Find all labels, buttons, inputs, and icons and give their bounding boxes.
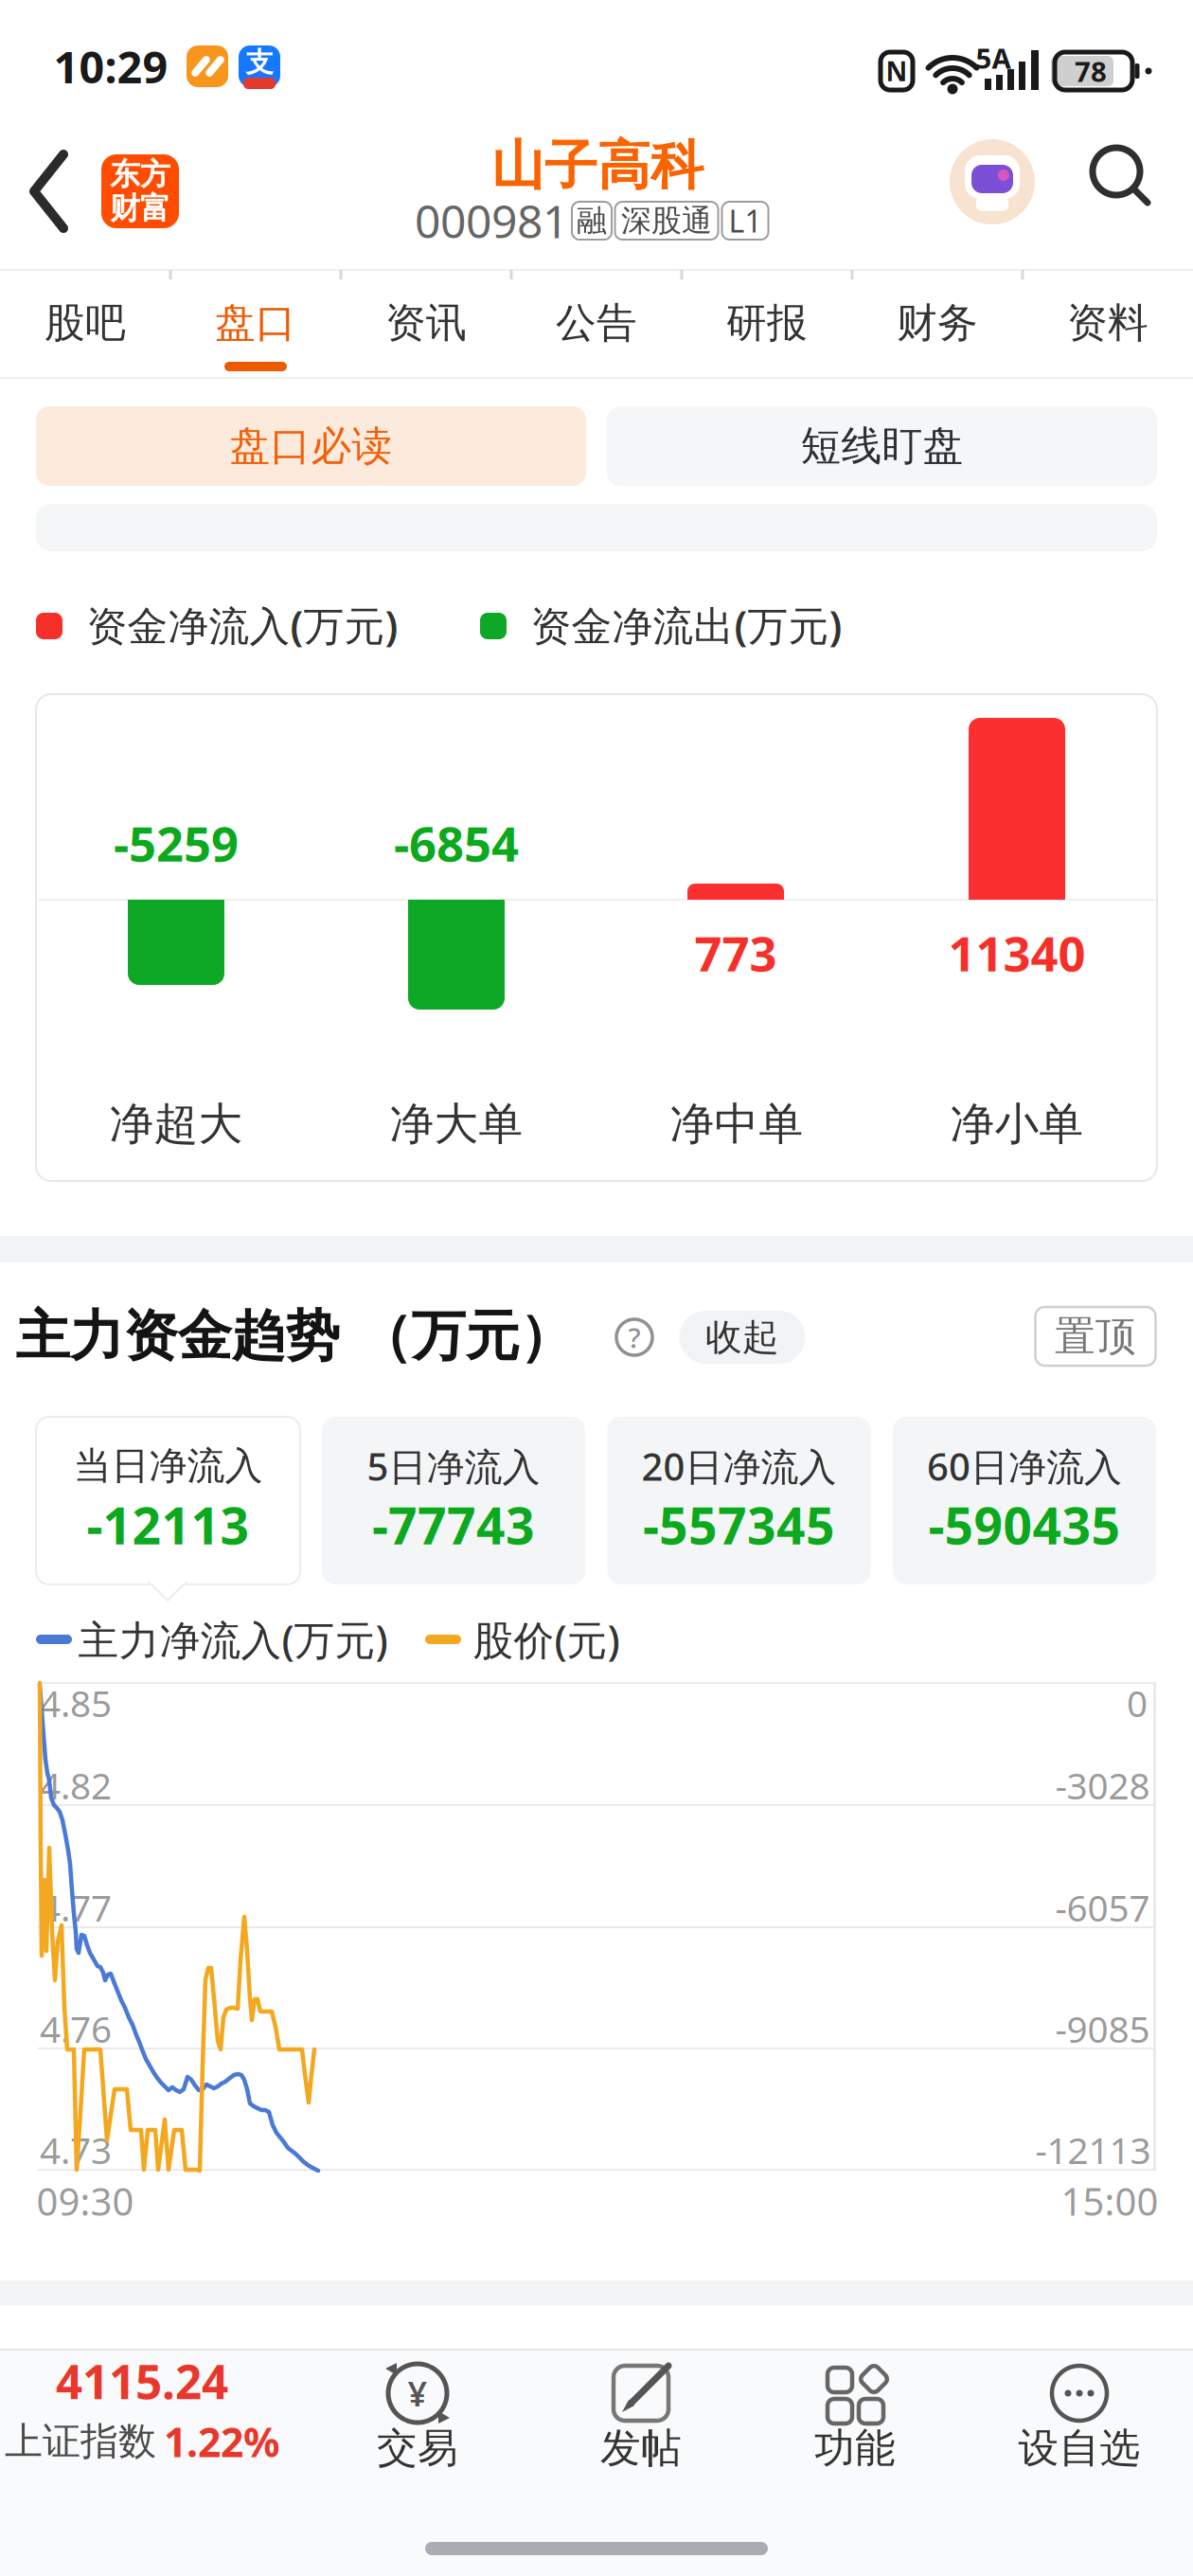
staticText: 研报 (726, 298, 808, 348)
button[interactable]: 短线盯盘 (607, 406, 1157, 486)
staticText: 置顶 (1055, 1311, 1136, 1361)
staticText: 财务 (897, 298, 978, 348)
staticText: 1.22% (164, 2415, 279, 2468)
staticText: 资金净流入(万元) (87, 598, 398, 652)
staticText: 上证指数 (5, 2418, 156, 2465)
staticText: 发帖 (600, 2423, 682, 2473)
staticText: L1 (729, 201, 762, 241)
staticText: 山子高科 (491, 133, 703, 198)
button[interactable]: 发帖 (537, 2344, 745, 2505)
staticText: -6057 (1055, 1883, 1150, 1932)
staticText: 资金净流出(万元) (531, 598, 842, 652)
button[interactable]: 东方 (101, 154, 179, 228)
button[interactable]: 盘口 (185, 280, 327, 366)
staticText: N (886, 53, 908, 89)
staticText: 60日净流入 (927, 1441, 1122, 1491)
staticText: 0 (1127, 1678, 1148, 1727)
staticText: 净大单 (390, 1097, 523, 1151)
staticText: -557345 (643, 1491, 835, 1558)
staticText: 融 (577, 202, 607, 239)
staticText: 78 (1075, 53, 1107, 89)
staticText: 4.76 (40, 2004, 112, 2053)
staticText: -5259 (114, 811, 239, 875)
staticText: 财富 (110, 190, 170, 227)
staticText: 资料 (1067, 298, 1148, 348)
staticText: 短线盯盘 (801, 421, 963, 471)
button[interactable]: 股吧 (14, 280, 156, 366)
staticText: 公告 (556, 298, 637, 348)
staticText: 20日净流入 (641, 1441, 837, 1491)
staticText: 4.73 (40, 2125, 112, 2174)
button[interactable]: 搜索 (1093, 148, 1153, 208)
staticText: 10:29 (53, 37, 168, 96)
staticText: 设自选 (1018, 2423, 1140, 2473)
staticText: 净小单 (950, 1097, 1084, 1151)
button[interactable]: 4115.24 (0, 2339, 284, 2481)
staticText: -77743 (372, 1491, 535, 1558)
staticText: -12113 (87, 1491, 249, 1558)
button[interactable]: 盘口必读 (36, 406, 586, 486)
staticText: -590435 (928, 1491, 1121, 1558)
staticText: 深股通 (621, 202, 712, 239)
button[interactable]: 当日净流入 (36, 1417, 300, 1584)
staticText: 5日净流入 (367, 1441, 540, 1491)
staticText: -9085 (1055, 2004, 1150, 2053)
button[interactable]: 帮助 (614, 1316, 655, 1358)
staticText: 股吧 (45, 298, 126, 348)
staticText: 5A (976, 39, 1011, 76)
staticText: -6854 (394, 811, 519, 875)
staticText: 交易 (377, 2423, 458, 2473)
staticText: 4.77 (40, 1883, 112, 1932)
staticText: 股价(元) (473, 1613, 620, 1666)
button[interactable]: 收起 (679, 1311, 805, 1364)
staticText: 4115.24 (56, 2350, 228, 2412)
button[interactable]: 置顶 (1035, 1307, 1156, 1366)
button[interactable]: 研报 (696, 280, 838, 366)
staticText: 支 (246, 45, 273, 80)
staticText: 东方 (110, 156, 170, 193)
button[interactable]: 5日净流入 (322, 1417, 585, 1584)
staticText: 4.82 (40, 1761, 112, 1809)
staticText: 盘口 (215, 298, 296, 348)
staticText: 净中单 (670, 1097, 803, 1151)
staticText: 000981 (415, 190, 568, 251)
staticText: 主力资金趋势 （万元） (16, 1303, 573, 1370)
button[interactable]: 财务 (866, 280, 1008, 366)
button[interactable]: 资料 (1037, 280, 1179, 366)
button[interactable]: 返回 (19, 147, 91, 236)
button[interactable]: 20日净流入 (607, 1417, 871, 1584)
staticText: 资讯 (385, 298, 467, 348)
button[interactable]: 资讯 (355, 280, 497, 366)
staticText: 净超大 (109, 1097, 243, 1151)
staticText: 主力净流入(万元) (78, 1613, 388, 1666)
staticText: -12113 (1035, 2125, 1151, 2174)
button[interactable]: 功能 (754, 2344, 962, 2505)
button[interactable]: 60日净流入 (893, 1417, 1156, 1584)
staticText: 收起 (705, 1315, 779, 1360)
staticText: ? (628, 1319, 641, 1356)
button[interactable]: 设自选 (975, 2344, 1184, 2505)
button[interactable]: ¥ (313, 2344, 522, 2505)
staticText: ¥ (408, 2371, 427, 2416)
staticText: 09:30 (36, 2176, 134, 2226)
staticText: 4.85 (40, 1678, 112, 1727)
staticText: 盘口必读 (230, 421, 392, 471)
staticText: 15:00 (1061, 2176, 1158, 2226)
staticText: 功能 (814, 2423, 896, 2473)
staticText: 当日净流入 (73, 1443, 263, 1489)
button[interactable]: 公告 (525, 280, 668, 366)
staticText: 11340 (948, 921, 1086, 985)
staticText: 773 (694, 921, 777, 985)
staticText: -3028 (1055, 1761, 1150, 1809)
button[interactable]: 助手 (950, 139, 1035, 224)
